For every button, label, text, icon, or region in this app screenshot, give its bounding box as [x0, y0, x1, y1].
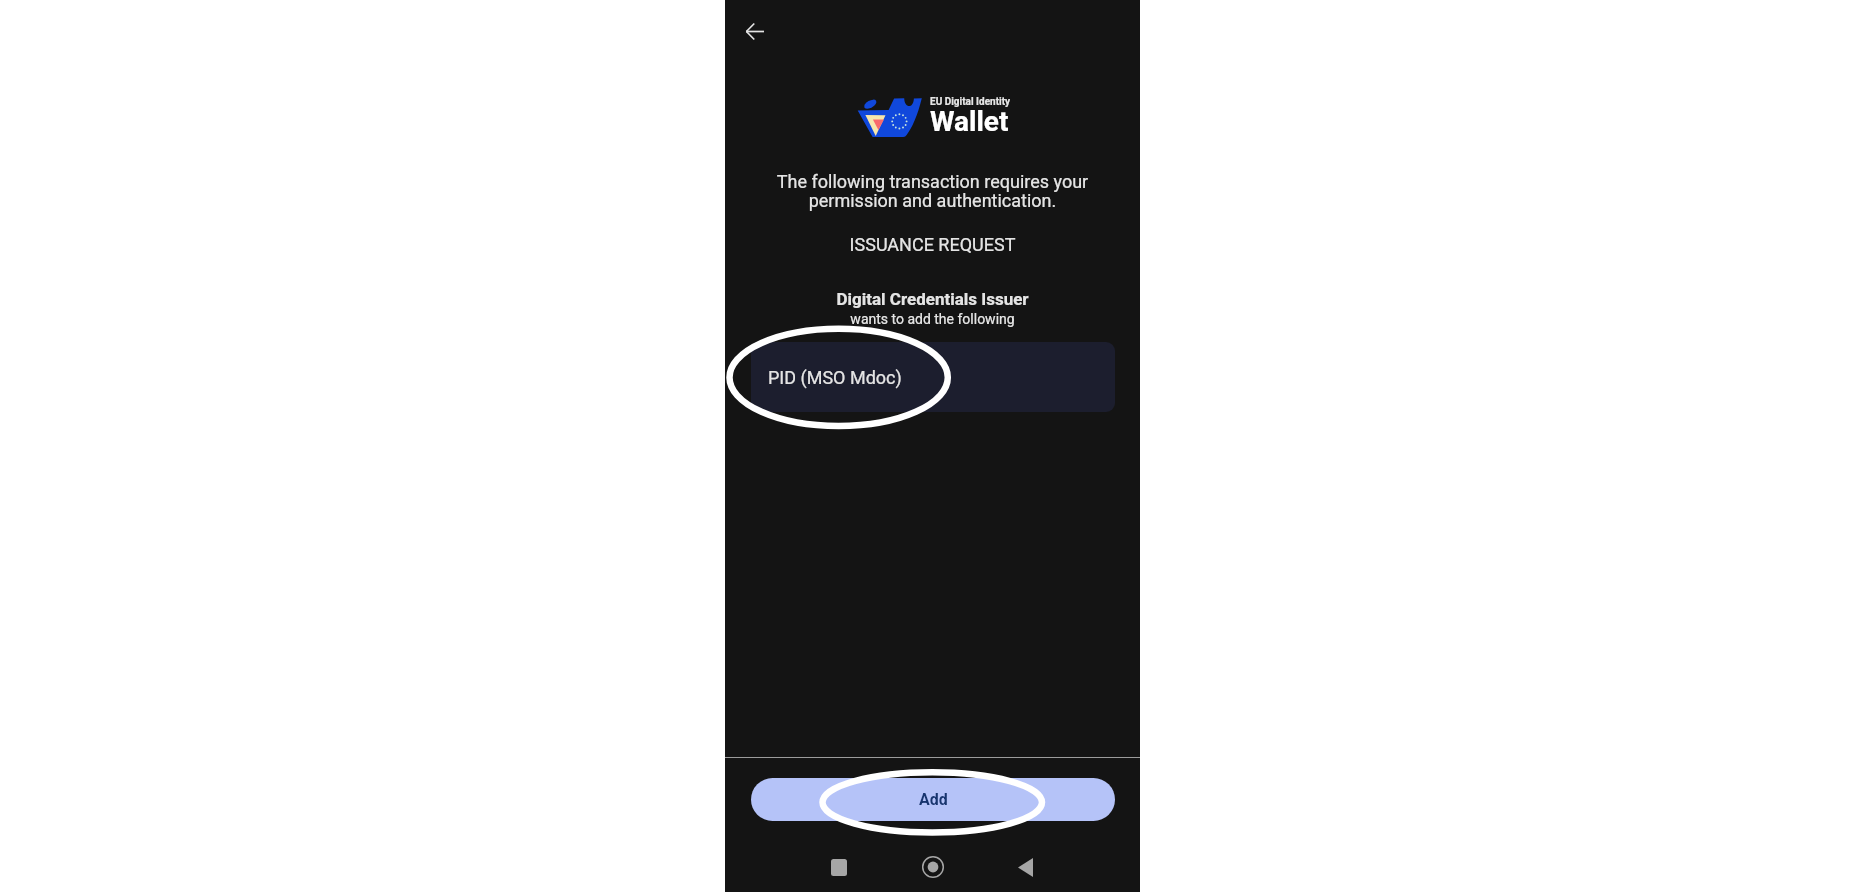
- button[interactable]: Home: [911, 845, 955, 889]
- button[interactable]: Back: [732, 8, 778, 54]
- button[interactable]: Add: [751, 778, 1115, 821]
- staticText: EU Digital Identity: [930, 96, 1011, 108]
- staticText: Add: [919, 790, 948, 809]
- staticText: ISSUANCE REQUEST: [725, 234, 1140, 255]
- staticText: The following transaction requires your …: [753, 171, 1112, 211]
- staticText: wants to add the following: [725, 311, 1140, 327]
- button[interactable]: PID (MSO Mdoc): [751, 342, 1115, 412]
- staticText: PID (MSO Mdoc): [768, 367, 902, 388]
- button[interactable]: Back: [1003, 845, 1047, 889]
- button[interactable]: Recent apps: [817, 845, 861, 889]
- staticText: Digital Credentials Issuer: [725, 289, 1140, 309]
- staticText: Wallet: [930, 105, 1009, 138]
